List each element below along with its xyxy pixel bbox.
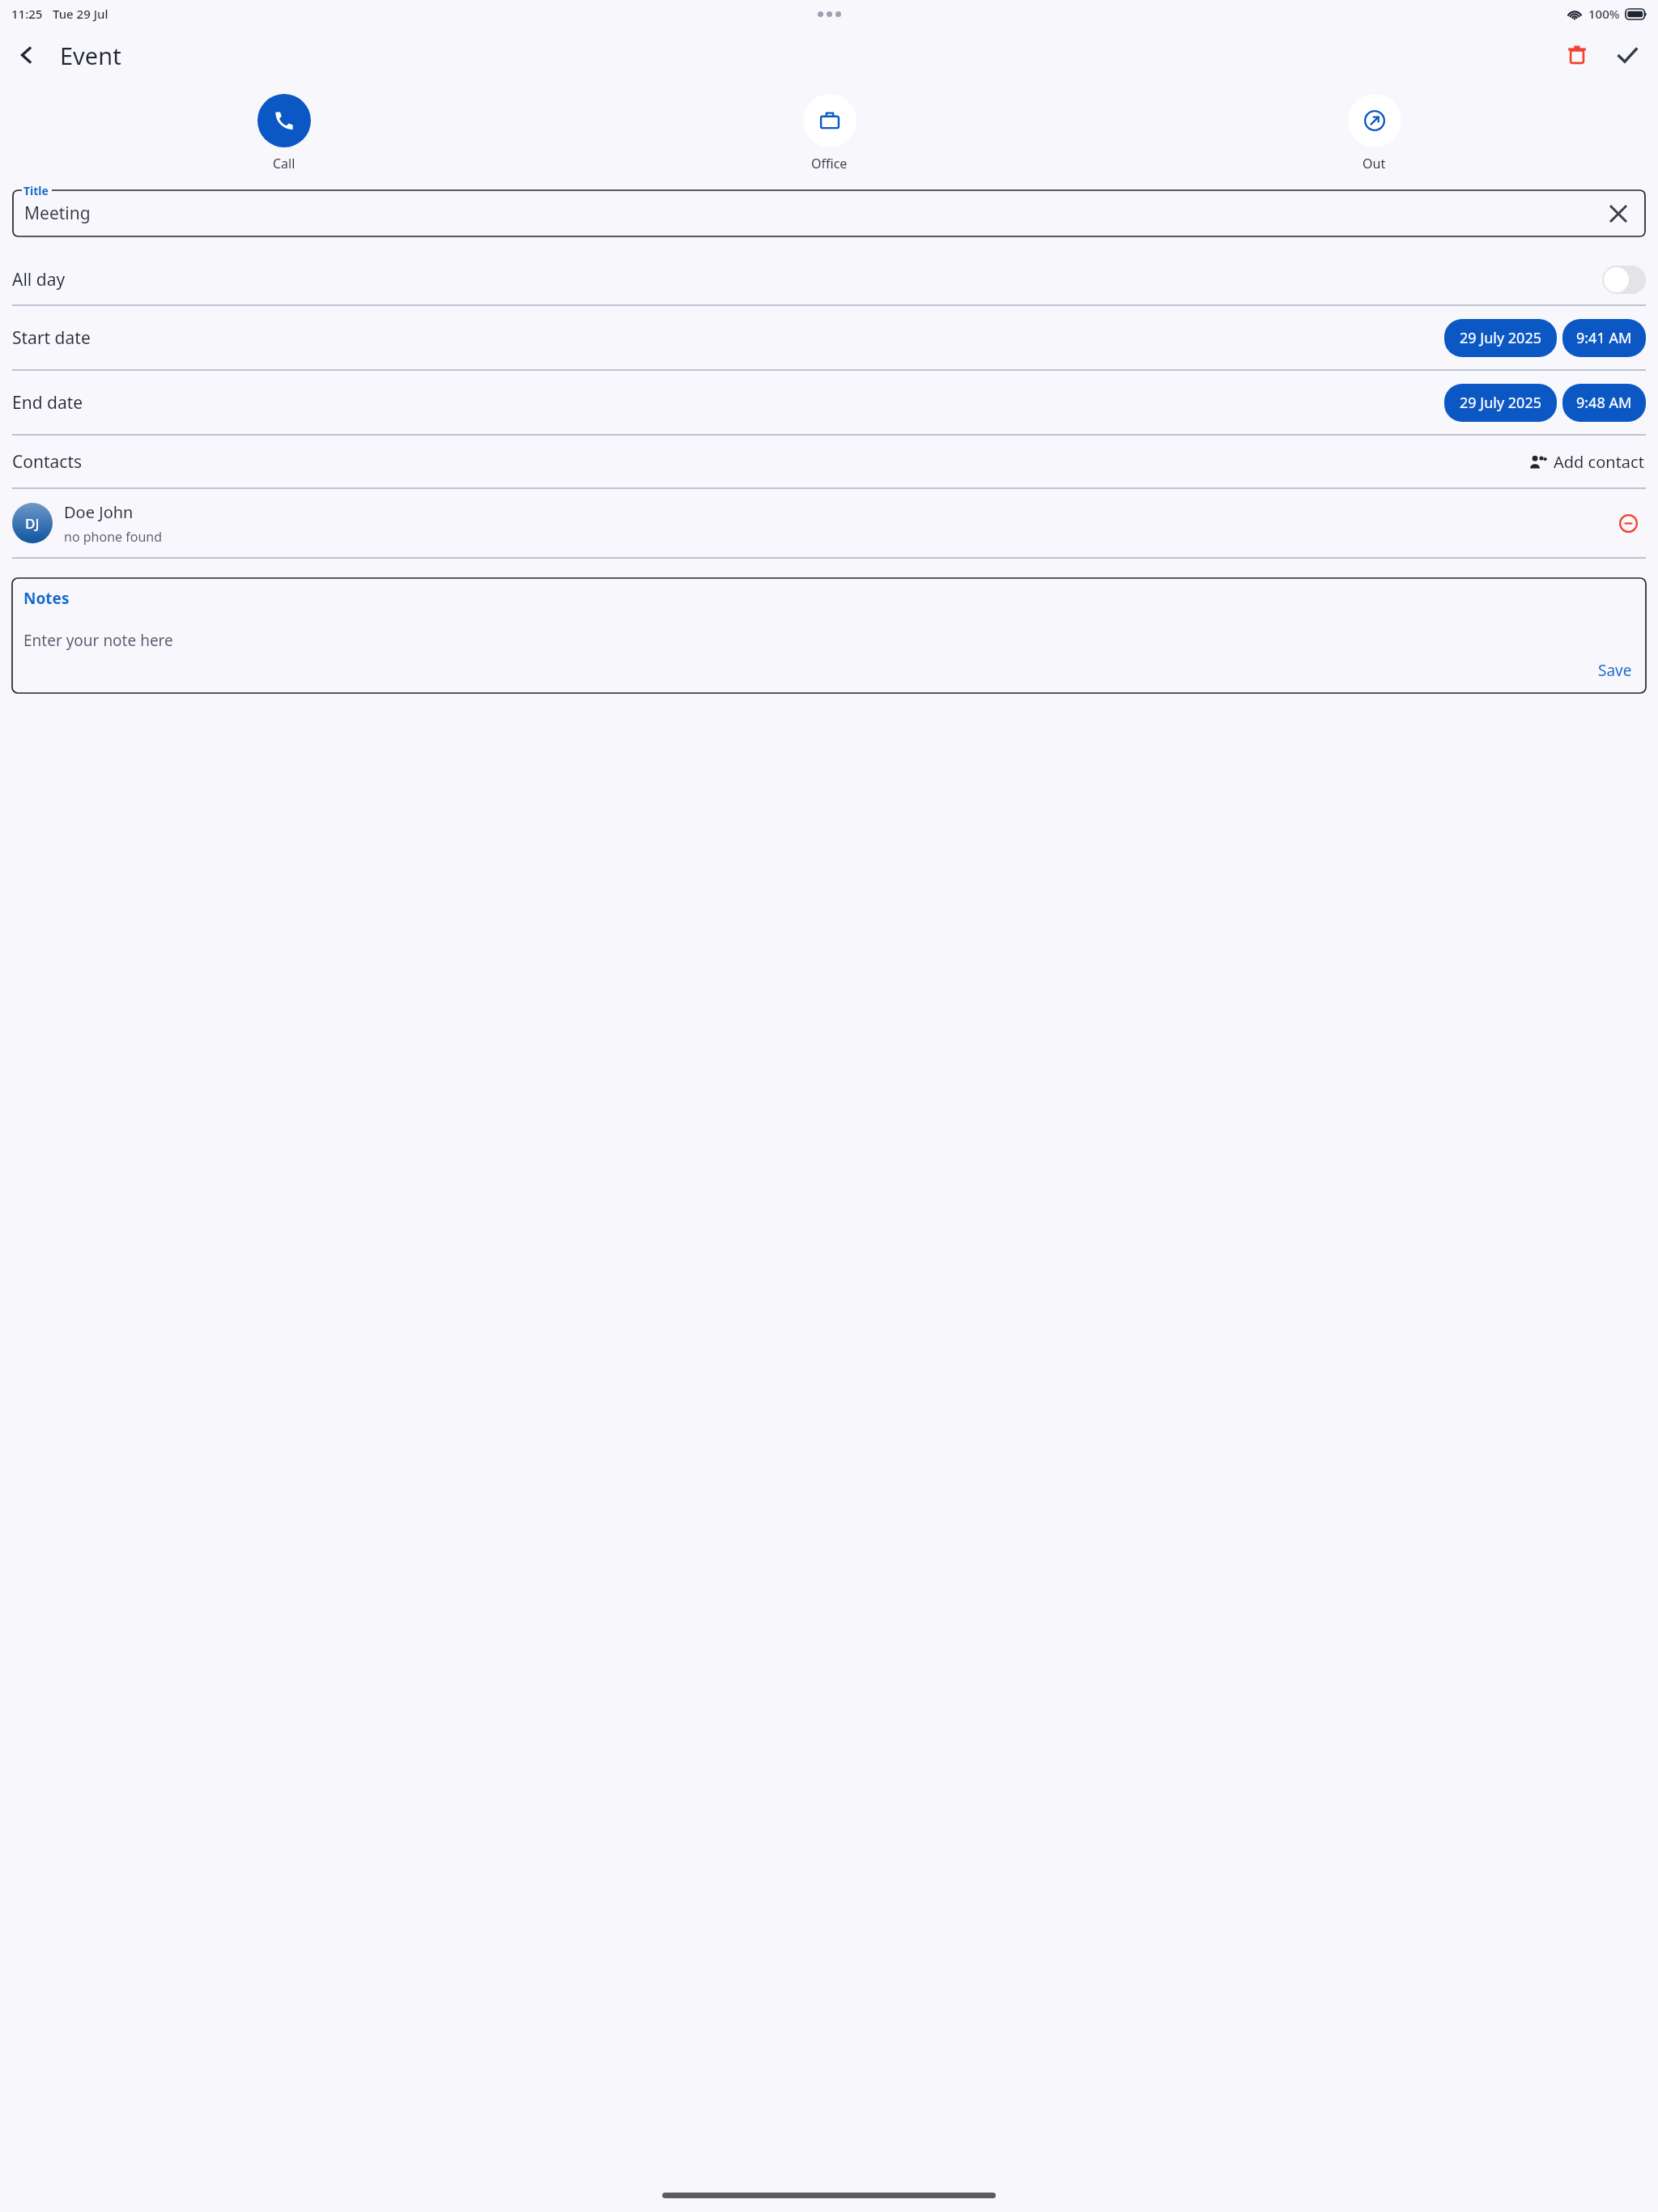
staticText: Add contact: [1554, 451, 1644, 473]
staticText: no phone found: [64, 528, 163, 546]
staticText: 100%: [1588, 6, 1620, 22]
button[interactable]: Title: [13, 190, 1645, 236]
staticText: 29 July 2025: [1460, 393, 1541, 413]
staticText: Event: [60, 40, 121, 71]
button[interactable]: Remove contact: [1610, 505, 1646, 541]
button[interactable]: 29 July 2025: [1444, 319, 1557, 357]
button[interactable]: Office: [557, 91, 1102, 176]
staticText: End date: [12, 391, 83, 415]
button[interactable]: Delete: [1554, 32, 1600, 78]
button[interactable]: Back: [5, 32, 50, 78]
staticText: Call: [273, 155, 295, 172]
staticText: Enter your note here: [23, 630, 173, 651]
button[interactable]: 9:48 AM: [1562, 384, 1646, 422]
button[interactable]: DJ: [0, 489, 1658, 557]
button[interactable]: Notes: [12, 578, 1646, 693]
button[interactable]: 9:41 AM: [1562, 319, 1646, 357]
staticText: Title: [23, 183, 49, 198]
staticText: 9:41 AM: [1576, 328, 1632, 348]
staticText: Doe John: [64, 501, 134, 523]
staticText: All day: [12, 268, 66, 291]
staticText: 11:25: [11, 6, 43, 22]
staticText: Tue 29 Jul: [53, 6, 108, 22]
button[interactable]: Add contact: [1528, 447, 1646, 477]
button[interactable]: All day: [0, 254, 1658, 304]
staticText: DJ: [25, 514, 40, 533]
button[interactable]: Clear title: [1603, 198, 1634, 229]
staticText: Office: [811, 155, 848, 172]
button[interactable]: Call: [11, 91, 557, 176]
button[interactable]: 29 July 2025: [1444, 384, 1557, 422]
staticText: 29 July 2025: [1460, 328, 1541, 348]
staticText: Start date: [12, 326, 91, 350]
staticText: Out: [1363, 155, 1386, 172]
staticText: Meeting: [24, 202, 91, 225]
button[interactable]: Save: [1596, 657, 1635, 683]
staticText: Notes: [23, 588, 70, 609]
button[interactable]: Confirm: [1605, 32, 1650, 78]
staticText: Contacts: [12, 450, 83, 474]
button[interactable]: Out: [1102, 91, 1647, 176]
staticText: 9:48 AM: [1576, 393, 1632, 413]
